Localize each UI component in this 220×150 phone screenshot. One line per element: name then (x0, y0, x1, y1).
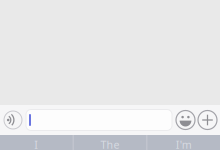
button[interactable]: Emoji keyboard (172, 110, 198, 129)
staticText: I (34, 137, 38, 150)
button[interactable]: I'm (147, 135, 220, 150)
button[interactable]: Add attachment (198, 110, 220, 129)
staticText: The (100, 137, 119, 150)
button[interactable]: The (74, 135, 146, 150)
button[interactable]: Dictate (0, 111, 26, 129)
staticText: I'm (176, 137, 192, 150)
